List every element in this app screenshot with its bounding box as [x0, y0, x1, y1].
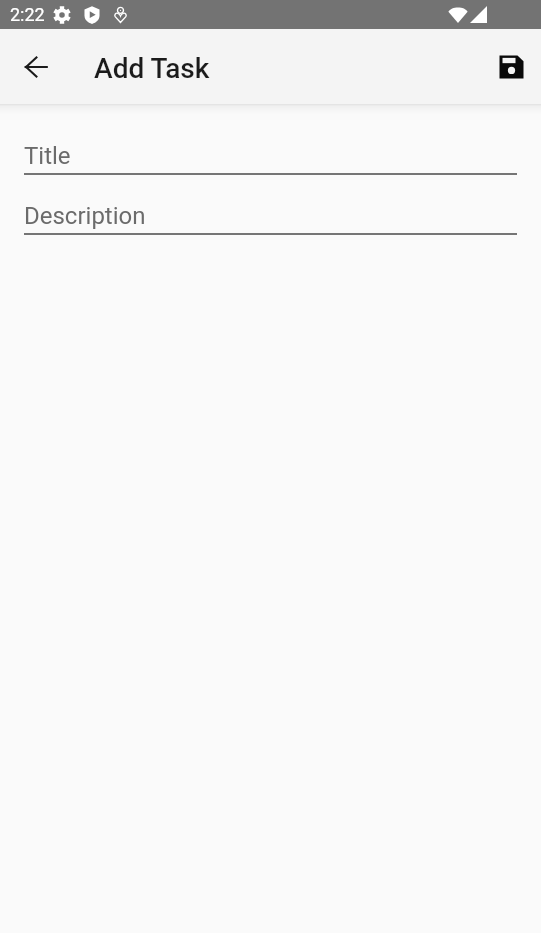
staticText: 2:22: [10, 4, 45, 25]
button[interactable]: Back: [12, 43, 60, 91]
staticText: Title: [24, 142, 71, 170]
button[interactable]: Title: [0, 139, 541, 175]
button[interactable]: Description: [0, 199, 541, 235]
button[interactable]: Save: [487, 43, 535, 91]
staticText: Description: [24, 202, 146, 230]
staticText: Add Task: [94, 52, 210, 85]
